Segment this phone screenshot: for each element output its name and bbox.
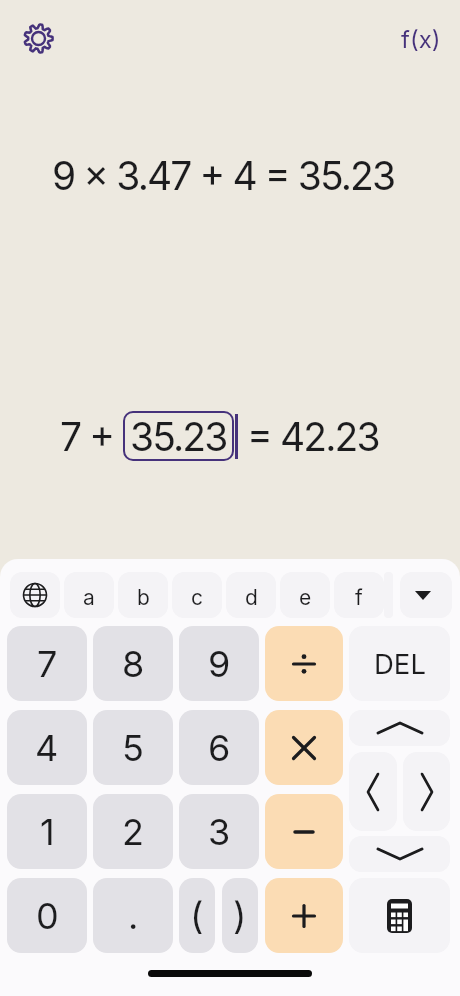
button[interactable]: ( — [179, 878, 215, 953]
button[interactable] — [23, 23, 54, 54]
button[interactable]: d — [226, 572, 276, 618]
button[interactable] — [349, 710, 450, 746]
staticText: 7 + — [60, 413, 123, 460]
button[interactable]: b — [118, 572, 168, 618]
staticText: 9 — [208, 642, 231, 686]
button[interactable]: 9 — [179, 626, 259, 701]
button[interactable]: f — [334, 572, 384, 618]
staticText: d — [245, 585, 258, 610]
button[interactable]: 1 — [7, 794, 87, 869]
button[interactable] — [265, 626, 343, 701]
staticText: f — [355, 585, 363, 610]
button[interactable] — [265, 878, 343, 953]
staticText: ( — [190, 893, 204, 938]
staticText: 0 — [36, 894, 59, 938]
staticText: 4 — [35, 726, 59, 770]
button[interactable]: DEL — [349, 626, 450, 701]
button[interactable]: 0 — [7, 878, 87, 953]
button[interactable]: 3 — [179, 794, 259, 869]
button[interactable] — [265, 710, 343, 785]
staticText: 9 × 3.47 + 4 = 35.23 — [52, 152, 395, 199]
button[interactable]: e — [280, 572, 330, 618]
button[interactable] — [403, 752, 450, 831]
button[interactable]: a — [64, 572, 114, 618]
staticText: 5 — [122, 726, 144, 770]
button[interactable]: . — [93, 878, 173, 953]
staticText: 3 — [208, 810, 231, 854]
staticText: a — [83, 585, 95, 610]
staticText: e — [299, 585, 312, 610]
staticText: = 42.23 — [238, 413, 379, 460]
staticText: 1 — [40, 810, 55, 854]
button[interactable] — [400, 572, 452, 618]
staticText: 2 — [122, 810, 144, 854]
staticText: c — [191, 585, 203, 610]
button[interactable]: 6 — [179, 710, 259, 785]
staticText: 8 — [122, 642, 145, 686]
button[interactable] — [265, 794, 343, 869]
button[interactable]: 5 — [93, 710, 173, 785]
button[interactable]: 4 — [7, 710, 87, 785]
button[interactable]: 8 — [93, 626, 173, 701]
staticText: 7 — [37, 642, 58, 686]
button[interactable] — [10, 572, 60, 618]
button[interactable]: 2 — [93, 794, 173, 869]
button[interactable] — [349, 752, 397, 831]
button[interactable]: ) — [222, 878, 258, 953]
staticText: 35.23 — [130, 413, 227, 460]
button[interactable]: f(x) — [401, 25, 441, 54]
staticText: . — [128, 894, 139, 938]
button[interactable] — [349, 836, 450, 872]
button[interactable]: c — [172, 572, 222, 618]
staticText: ) — [233, 893, 247, 938]
button[interactable]: 7 — [7, 626, 87, 701]
staticText: f(x) — [401, 25, 441, 54]
staticText: b — [137, 585, 150, 610]
button[interactable] — [349, 878, 450, 953]
staticText: DEL — [374, 647, 426, 680]
staticText: 6 — [208, 726, 231, 770]
